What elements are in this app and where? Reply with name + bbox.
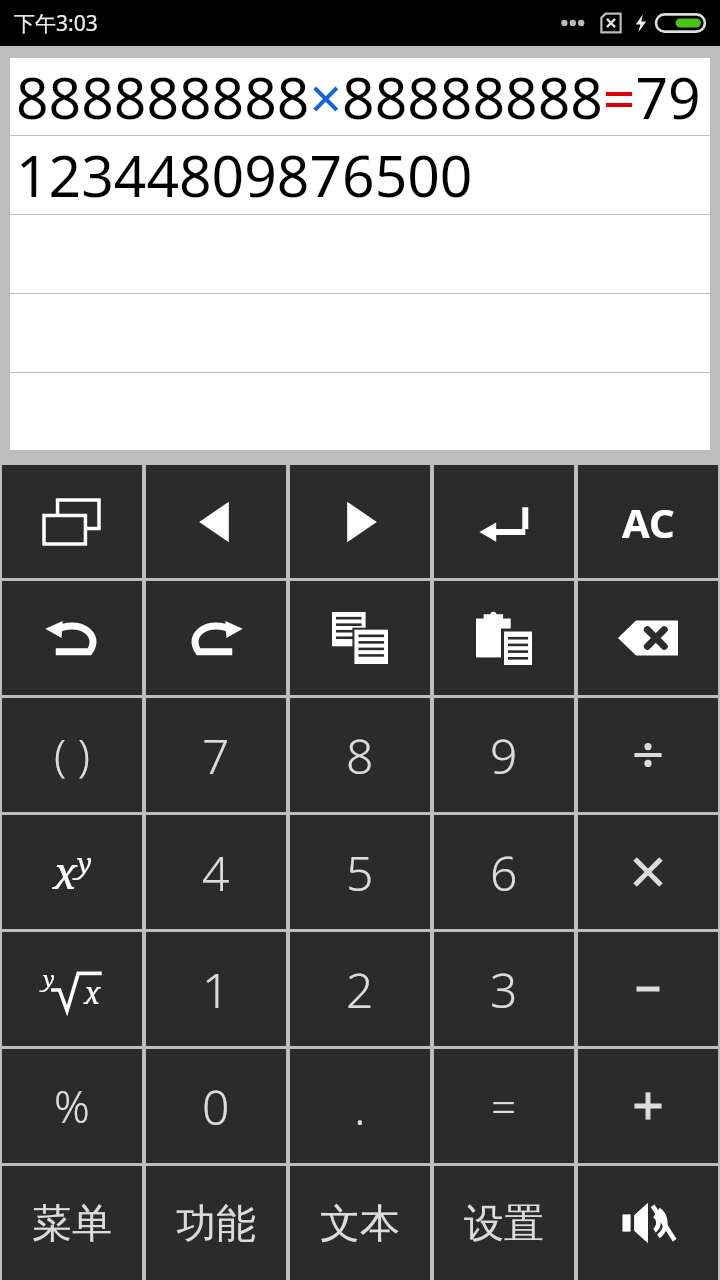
button[interactable]: 9 (434, 698, 574, 812)
staticText: 7 (202, 723, 230, 788)
staticText: 5 (346, 840, 374, 905)
staticText: ( ) (54, 725, 90, 785)
button[interactable]: . (290, 1049, 430, 1163)
button[interactable]: Left (146, 465, 286, 578)
staticText: 3 (490, 957, 518, 1022)
button[interactable]: AC (578, 465, 718, 578)
button[interactable]: Plus (578, 1049, 718, 1163)
staticText: 888888888×88888888=790 (16, 58, 710, 135)
staticText: 8 (346, 723, 374, 788)
button[interactable]: 文本 (290, 1166, 430, 1280)
button[interactable]: Minus (578, 932, 718, 1046)
button[interactable]: % (2, 1049, 142, 1163)
button[interactable]: 2 (290, 932, 430, 1046)
staticText: 功能 (176, 1198, 256, 1248)
button[interactable]: 功能 (146, 1166, 286, 1280)
button[interactable]: 菜单 (2, 1166, 142, 1280)
button[interactable]: Copy (290, 581, 430, 695)
button[interactable]: 7 (146, 698, 286, 812)
staticText: 2 (346, 957, 374, 1022)
staticText: 4 (202, 840, 230, 905)
button[interactable]: Right (290, 465, 430, 578)
button[interactable]: Sound (578, 1166, 718, 1280)
button[interactable]: = (434, 1049, 574, 1163)
button[interactable]: Enter (434, 465, 574, 578)
button[interactable]: 设置 (434, 1166, 574, 1280)
staticText: 9 (490, 723, 518, 788)
staticText: 12344809876500 (16, 136, 473, 214)
staticText: = (491, 1076, 517, 1136)
staticText: AC (622, 495, 675, 549)
staticText: 下午3:03 (14, 9, 98, 38)
staticText: 0 (202, 1074, 230, 1139)
button[interactable]: Divide (578, 698, 718, 812)
button[interactable]: 6 (434, 815, 574, 929)
button[interactable]: 3 (434, 932, 574, 1046)
staticText: 菜单 (32, 1198, 112, 1248)
button[interactable]: Backspace (578, 581, 718, 695)
staticText: . (354, 1074, 366, 1139)
button[interactable]: Paste (434, 581, 574, 695)
button[interactable]: xy (2, 815, 142, 929)
staticText: 设置 (464, 1198, 544, 1248)
staticText: 6 (490, 840, 518, 905)
button[interactable]: Redo (146, 581, 286, 695)
button[interactable]: Multiply (578, 815, 718, 929)
button[interactable]: 8 (290, 698, 430, 812)
button[interactable]: ( ) (2, 698, 142, 812)
button[interactable]: Nth root (2, 932, 142, 1046)
staticText: 文本 (320, 1198, 400, 1248)
staticText: xy (53, 842, 92, 902)
staticText: x (84, 972, 101, 1013)
staticText: 1 (202, 957, 230, 1022)
button[interactable]: 1 (146, 932, 286, 1046)
button[interactable]: Undo (2, 581, 142, 695)
button[interactable]: 0 (146, 1049, 286, 1163)
button[interactable]: 4 (146, 815, 286, 929)
staticText: y (43, 963, 55, 993)
staticText: % (54, 1076, 90, 1136)
button[interactable]: 5 (290, 815, 430, 929)
button[interactable]: Recent (2, 465, 142, 578)
